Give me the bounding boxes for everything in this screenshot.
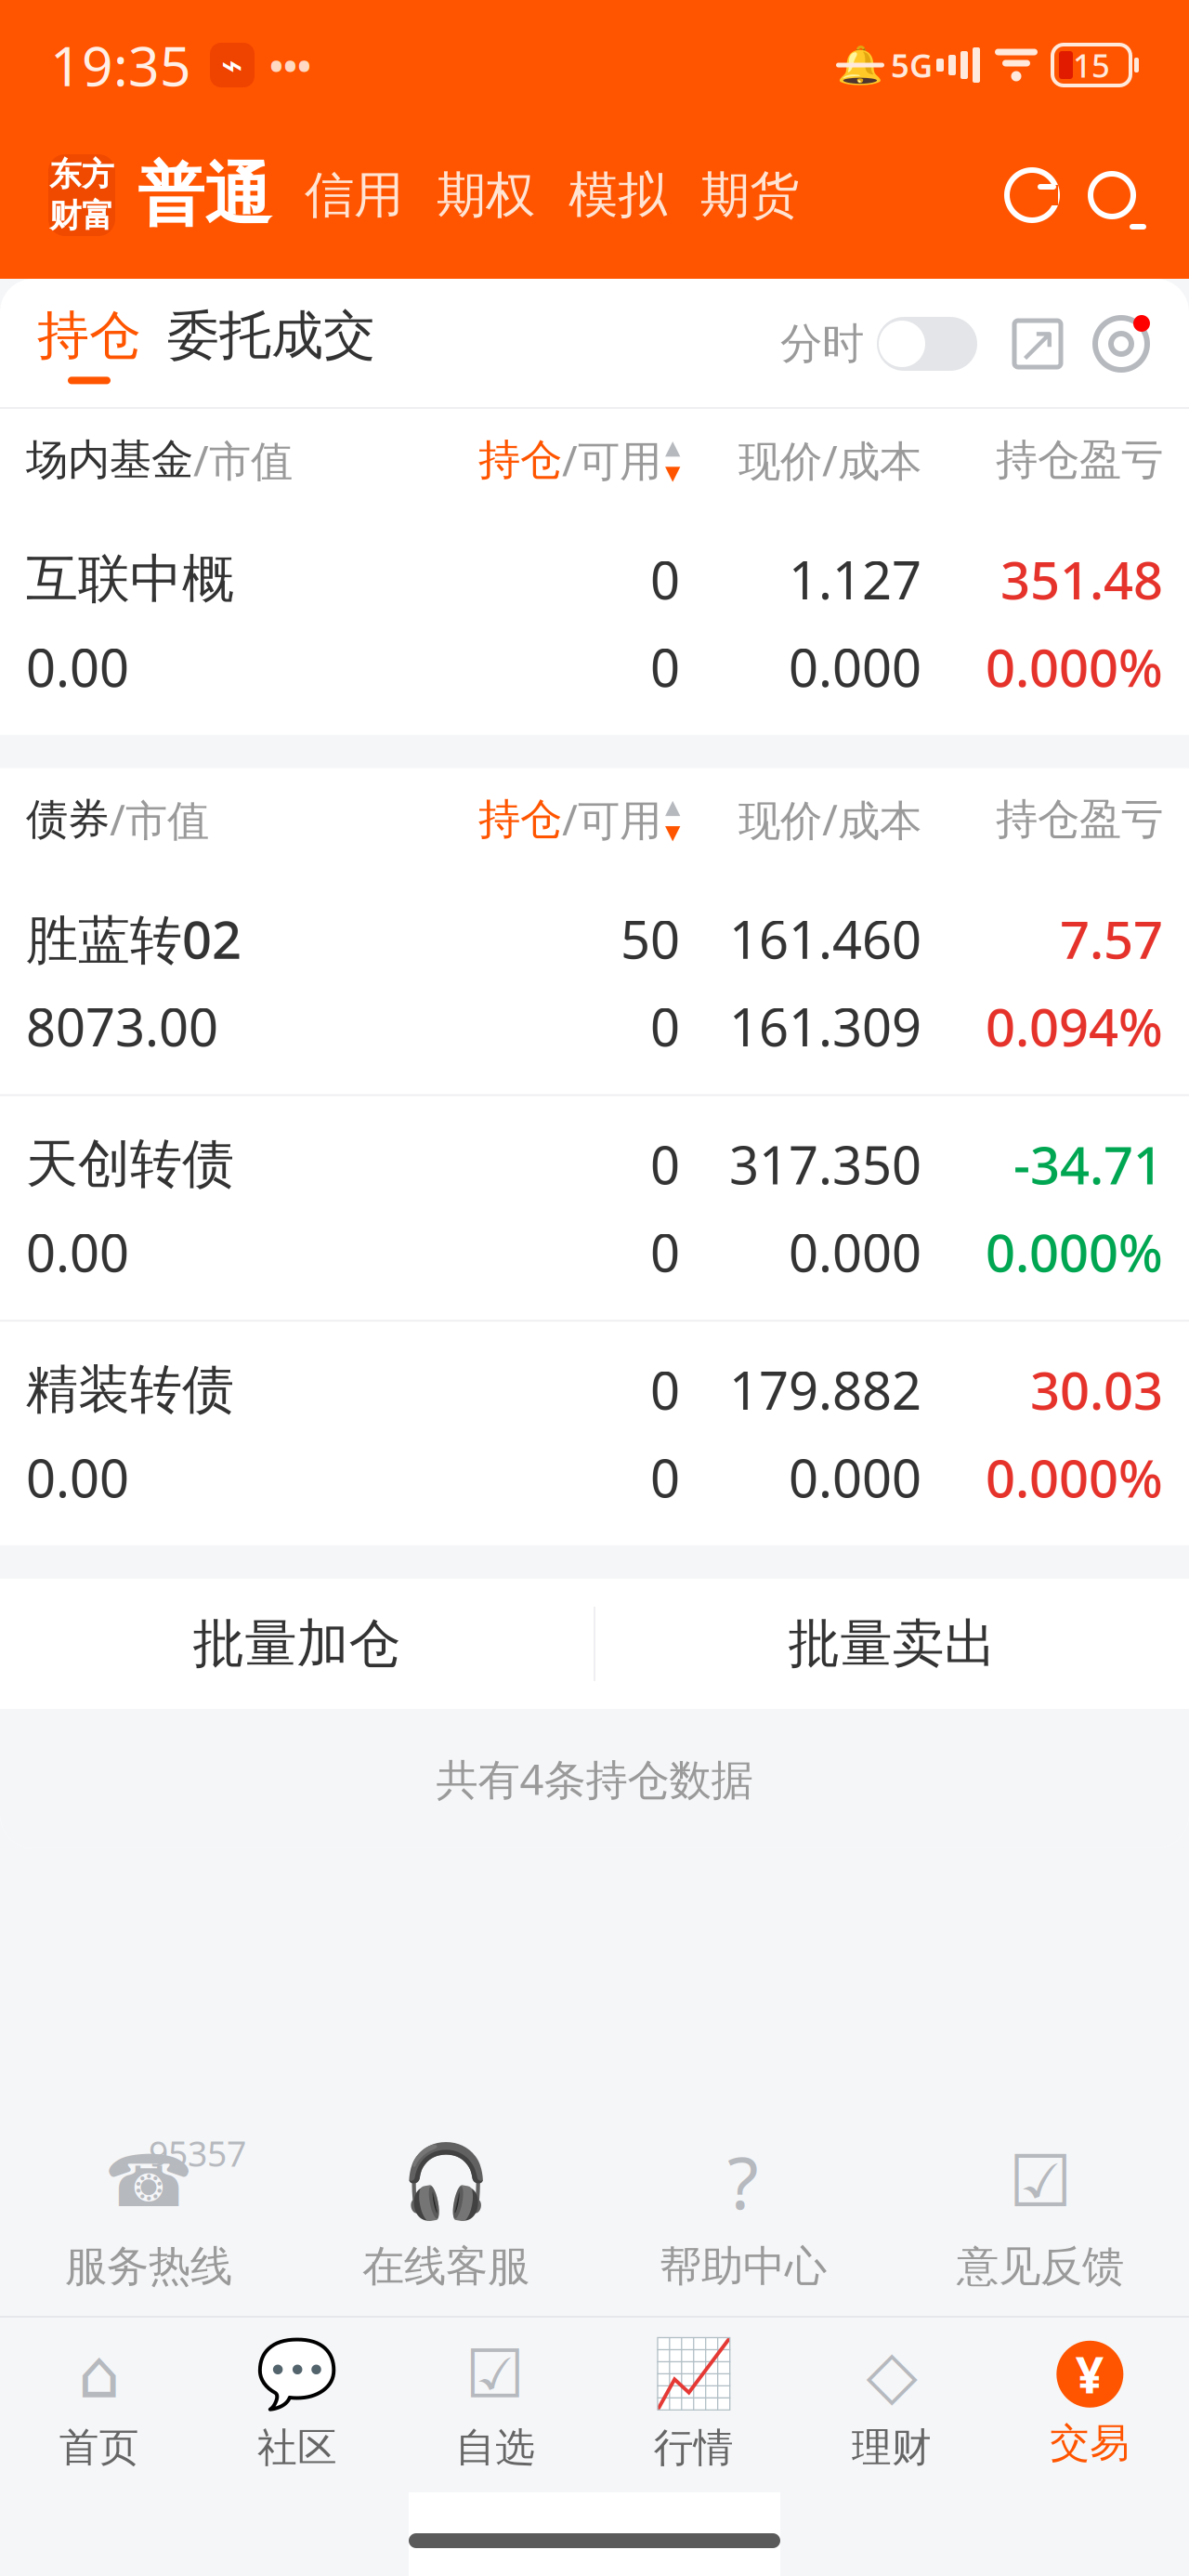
staticText: 0.000: [789, 1443, 921, 1512]
staticText: 模拟: [568, 165, 667, 226]
staticText: 50: [621, 904, 680, 973]
button[interactable]: 精装转债: [0, 1322, 1189, 1545]
staticText: 0.00: [26, 1217, 129, 1286]
button[interactable]: 现价/成本: [680, 432, 921, 488]
button[interactable]: 📈: [594, 2336, 793, 2472]
button[interactable]: 分享: [1009, 315, 1066, 373]
button[interactable]: 信用: [271, 165, 403, 226]
staticText: 0: [650, 545, 680, 614]
staticText: /可用: [562, 791, 661, 847]
staticText: 胜蓝转02: [26, 904, 242, 973]
button[interactable]: 委托成交: [167, 304, 375, 384]
staticText: ⌂: [78, 2336, 120, 2412]
staticText: ☎: [104, 2140, 193, 2222]
staticText: 351.48: [1000, 545, 1163, 614]
staticText: /可用: [562, 432, 661, 488]
staticText: 1.127: [789, 545, 921, 614]
staticText: ▼: [665, 461, 680, 484]
button[interactable]: 期权: [403, 165, 535, 226]
staticText: 5G: [891, 44, 933, 86]
staticText: •••: [269, 40, 311, 90]
button[interactable]: 设置: [1091, 313, 1152, 375]
staticText: 自选: [455, 2423, 535, 2472]
button[interactable]: 普通: [115, 154, 271, 236]
button[interactable]: 现价/成本: [680, 791, 921, 847]
staticText: 19:35: [50, 29, 191, 101]
staticText: 期货: [700, 165, 799, 226]
staticText: 0.000%: [986, 1443, 1163, 1512]
staticText: 95357: [149, 2130, 246, 2176]
button[interactable]: ⌂: [0, 2336, 198, 2472]
button[interactable]: 互联中概: [0, 511, 1189, 735]
staticText: ▲: [665, 795, 680, 818]
staticText: 共有4条持仓数据: [436, 1751, 753, 1807]
staticText: ¥: [1075, 2341, 1104, 2407]
staticText: ↗: [1017, 316, 1058, 372]
staticText: 0.00: [26, 1443, 129, 1512]
button[interactable]: 💬: [198, 2336, 396, 2472]
button[interactable]: 🎧: [297, 2135, 594, 2292]
staticText: ☑: [465, 2336, 526, 2412]
staticText: 交易: [1050, 2419, 1130, 2467]
staticText: 持仓盈亏: [996, 794, 1163, 845]
staticText: 期权: [437, 165, 535, 226]
button[interactable]: 持仓盈亏: [921, 794, 1163, 845]
button[interactable]: 胜蓝转02: [0, 870, 1189, 1094]
staticText: 分时: [780, 318, 864, 370]
button[interactable]: ¥: [991, 2341, 1189, 2467]
button[interactable]: ☑: [396, 2336, 594, 2472]
staticText: 0: [650, 1443, 680, 1512]
staticText: 意见反馈: [957, 2241, 1124, 2292]
staticText: 0.000: [789, 632, 921, 701]
staticText: 互联中概: [26, 547, 234, 611]
staticText: 现价/成本: [738, 791, 921, 847]
button[interactable]: 东方财富: [48, 154, 115, 236]
staticText: 0.000%: [986, 632, 1163, 701]
staticText: 317.350: [729, 1130, 921, 1199]
button[interactable]: ☎: [0, 2135, 297, 2292]
staticText: 现价/成本: [738, 432, 921, 488]
staticText: 首页: [59, 2423, 139, 2472]
button[interactable]: 持仓: [478, 432, 680, 488]
staticText: 帮助中心: [660, 2241, 827, 2292]
button[interactable]: 模拟: [535, 165, 667, 226]
staticText: 财富: [49, 196, 114, 236]
button[interactable]: 持仓: [478, 791, 680, 847]
staticText: 服务热线: [65, 2241, 232, 2292]
staticText: -34.71: [1013, 1130, 1163, 1199]
staticText: 债券: [26, 794, 110, 845]
staticText: 🎧: [401, 2140, 490, 2222]
button[interactable]: 搜索: [1083, 166, 1141, 224]
staticText: 0.000%: [986, 1217, 1163, 1286]
staticText: 179.882: [729, 1355, 921, 1424]
staticText: ▲: [665, 436, 680, 459]
button[interactable]: ☑: [892, 2135, 1189, 2292]
button[interactable]: 天创转债: [0, 1096, 1189, 1320]
button[interactable]: 期货: [667, 165, 799, 226]
button[interactable]: 分时: [780, 317, 977, 371]
staticText: 0: [650, 1217, 680, 1286]
staticText: 普通: [137, 154, 271, 236]
staticText: 💬: [255, 2336, 339, 2412]
staticText: 天创转债: [26, 1132, 234, 1196]
staticText: 批量加仓: [193, 1612, 401, 1676]
button[interactable]: ◇: [793, 2336, 991, 2472]
staticText: 🔔: [837, 44, 883, 86]
staticText: ▼: [665, 821, 680, 843]
staticText: 精装转债: [26, 1358, 234, 1422]
staticText: 30.03: [1030, 1355, 1163, 1424]
staticText: 持仓: [478, 434, 562, 486]
staticText: 0: [650, 632, 680, 701]
staticText: 0: [650, 1130, 680, 1199]
button[interactable]: 批量卖出: [595, 1579, 1189, 1709]
button[interactable]: 持仓: [37, 304, 167, 384]
staticText: 0: [650, 992, 680, 1061]
button[interactable]: 持仓盈亏: [921, 434, 1163, 486]
staticText: 场内基金: [26, 434, 193, 486]
button[interactable]: ?: [594, 2135, 892, 2292]
staticText: /市值: [193, 432, 293, 488]
staticText: 161.460: [729, 904, 921, 973]
button[interactable]: 批量加仓: [0, 1579, 594, 1709]
button[interactable]: 刷新: [1003, 166, 1061, 224]
staticText: ⌁: [221, 44, 243, 86]
